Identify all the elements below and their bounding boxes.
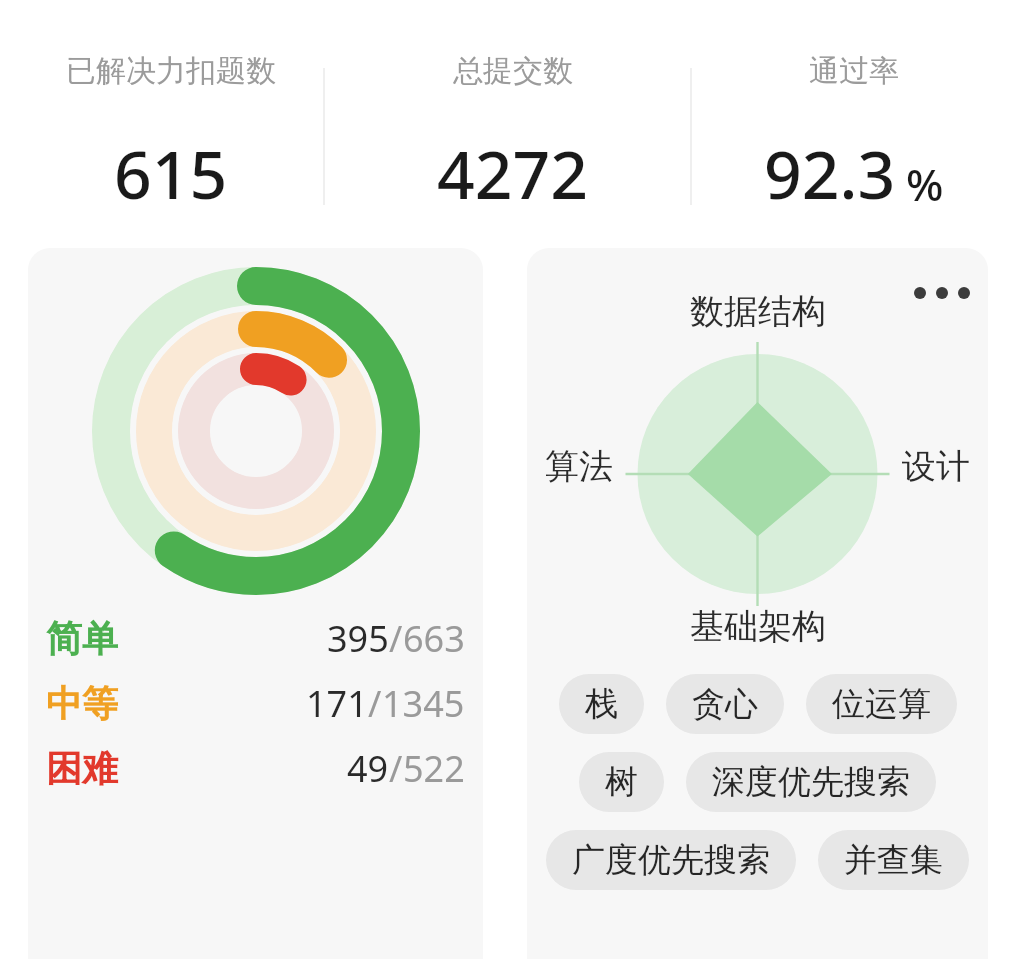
staticText: 基础架构: [690, 605, 826, 648]
button[interactable]: 中等: [46, 679, 465, 728]
staticText: 位运算: [832, 683, 931, 725]
staticText: 数据结构: [690, 290, 826, 333]
button[interactable]: 总提交数: [342, 0, 683, 248]
staticText: 困难: [46, 746, 118, 791]
button[interactable]: 贪心: [666, 674, 784, 734]
staticText: /: [389, 744, 403, 793]
staticText: /: [389, 614, 403, 663]
staticText: 1345: [382, 679, 465, 728]
button[interactable]: More options: [918, 276, 966, 310]
staticText: 522: [403, 744, 465, 793]
button[interactable]: 广度优先搜索: [546, 830, 796, 890]
staticText: 算法: [545, 445, 613, 488]
button[interactable]: 位运算: [806, 674, 957, 734]
staticText: 深度优先搜索: [712, 761, 910, 803]
staticText: 贪心: [692, 683, 758, 725]
staticText: 广度优先搜索: [572, 839, 770, 881]
staticText: 615: [114, 128, 228, 218]
staticText: 171: [306, 679, 368, 728]
staticText: 树: [605, 761, 638, 803]
staticText: 并查集: [844, 839, 943, 881]
staticText: 663: [403, 614, 465, 663]
button[interactable]: 已解决力扣题数: [0, 0, 342, 248]
button[interactable]: More options: [527, 248, 988, 959]
staticText: 4272: [437, 128, 589, 218]
staticText: 92.3: [764, 128, 896, 218]
button[interactable]: 简单: [28, 248, 483, 959]
button[interactable]: 通过率: [683, 0, 1024, 248]
staticText: 已解决力扣题数: [66, 52, 276, 90]
staticText: 395: [327, 614, 389, 663]
staticText: 简单: [46, 616, 118, 661]
staticText: /: [368, 679, 382, 728]
staticText: 中等: [46, 681, 118, 726]
button[interactable]: 栈: [559, 674, 644, 734]
staticText: 通过率: [809, 52, 899, 90]
staticText: 49: [347, 744, 389, 793]
button[interactable]: 困难: [46, 744, 465, 793]
button[interactable]: 简单: [46, 614, 465, 663]
button[interactable]: 深度优先搜索: [686, 752, 936, 812]
staticText: 总提交数: [453, 52, 573, 90]
staticText: 栈: [585, 683, 618, 725]
staticText: 设计: [902, 445, 970, 488]
button[interactable]: 并查集: [818, 830, 969, 890]
staticText: %: [906, 154, 944, 214]
button[interactable]: 树: [579, 752, 664, 812]
